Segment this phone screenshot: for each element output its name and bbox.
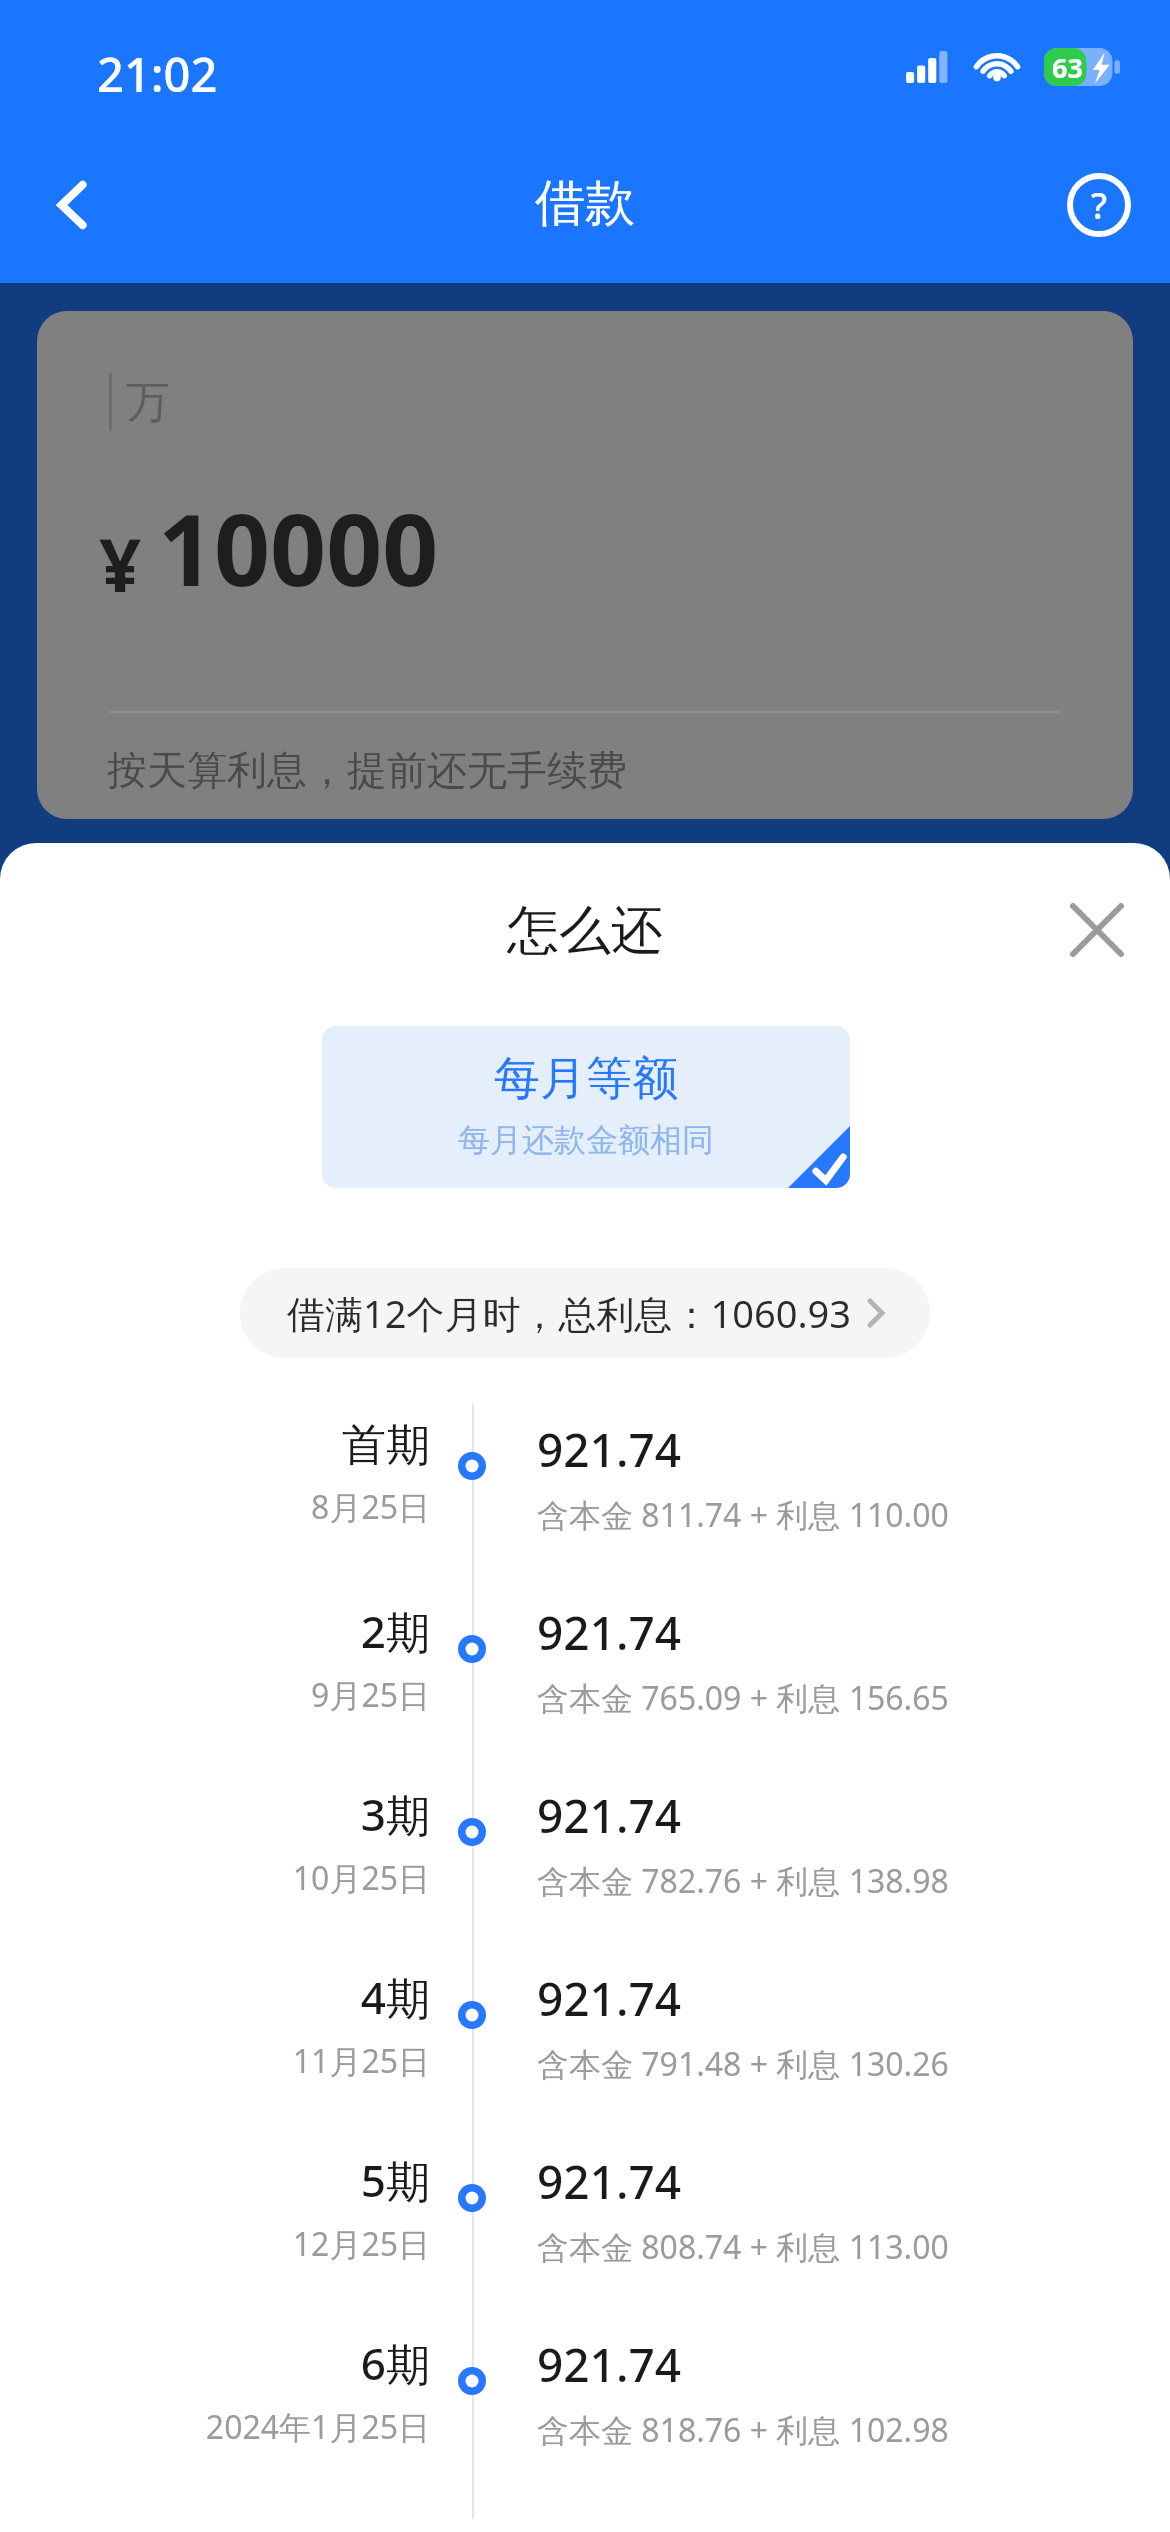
staticText: 首期 [342,1418,430,1473]
button[interactable]: 首期 [20,1418,430,1546]
button[interactable]: Help [1052,158,1146,252]
button[interactable]: 921.74 [537,1967,1117,2086]
staticText: 9月25日 [311,1673,430,1717]
button[interactable]: 每月等额 [322,1026,850,1188]
staticText: 921.74 [537,1601,682,1664]
staticText: 10000 [158,481,439,614]
button[interactable]: Back [26,158,120,252]
staticText: 5期 [360,2150,430,2210]
button[interactable]: 借满12个月时，总利息：1060.93 [240,1268,930,1358]
staticText: 每月还款金额相同 [458,1120,714,1160]
staticText: 12月25日 [292,2222,430,2266]
staticText: 含本金 808.74 + 利息 113.00 [537,2225,949,2269]
button[interactable]: 2期 [20,1601,430,1729]
staticText: 含本金 818.76 + 利息 102.98 [537,2408,949,2452]
button[interactable]: 5期 [20,2150,430,2278]
staticText: 含本金 782.76 + 利息 138.98 [537,1859,949,1903]
button[interactable]: 921.74 [537,1418,1117,1537]
staticText: 含本金 811.74 + 利息 110.00 [537,1493,949,1537]
staticText: 921.74 [537,1784,682,1847]
staticText: 万 [126,375,170,430]
button[interactable]: Close [1050,883,1144,977]
staticText: 21:02 [97,42,218,106]
button[interactable]: 921.74 [537,2150,1117,2269]
button[interactable]: 6期 [20,2333,430,2461]
button[interactable]: 921.74 [537,1601,1117,1720]
staticText: 每月等额 [494,1050,678,1108]
staticText: 10月25日 [292,1856,430,1900]
staticText: 6期 [360,2333,430,2393]
staticText: 3期 [360,1784,430,1844]
staticText: 4期 [360,1967,430,2027]
staticText: 921.74 [537,1967,682,2030]
staticText: 2期 [360,1601,430,1661]
button[interactable]: 3期 [20,1784,430,1912]
button[interactable]: 4期 [20,1967,430,2095]
staticText: 按天算利息，提前还无手续费 [107,745,627,795]
staticText: 8月25日 [311,1485,430,1529]
staticText: 借款 [535,172,635,235]
staticText: 11月25日 [292,2039,430,2083]
staticText: 怎么还 [507,898,663,964]
staticText: 2024年1月25日 [205,2405,430,2449]
staticText: 含本金 791.48 + 利息 130.26 [537,2042,949,2086]
staticText: 含本金 765.09 + 利息 156.65 [537,1676,949,1720]
staticText: 921.74 [537,2333,682,2396]
staticText: 921.74 [537,1418,682,1481]
button[interactable]: 921.74 [537,1784,1117,1903]
staticText: 借满12个月时，总利息：1060.93 [287,1287,852,1339]
button[interactable]: 921.74 [537,2333,1117,2452]
staticText: ? [1091,181,1108,230]
staticText: ¥ [99,513,142,614]
staticText: 63 [1052,49,1083,86]
staticText: 921.74 [537,2150,682,2213]
